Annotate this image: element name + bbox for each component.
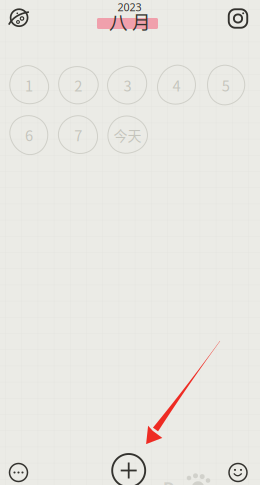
button[interactable]: 5 xyxy=(201,60,250,110)
button[interactable]: Explore xyxy=(1,2,37,34)
staticText: 5 xyxy=(222,74,230,96)
staticText: Da xyxy=(163,477,185,485)
staticText: 4 xyxy=(173,74,181,96)
button[interactable]: 1 xyxy=(4,60,54,110)
button[interactable]: 今天 xyxy=(103,110,152,160)
staticText: 今天 xyxy=(113,125,141,145)
button[interactable]: More xyxy=(0,454,36,485)
staticText: 1 xyxy=(25,74,33,96)
staticText: 3 xyxy=(123,74,131,96)
staticText: 2 xyxy=(74,74,82,96)
button[interactable]: 6 xyxy=(4,110,54,160)
button[interactable]: Add entry xyxy=(107,448,151,485)
button[interactable]: 4 xyxy=(152,60,201,110)
staticText: 八 月 xyxy=(109,7,151,34)
staticText: 7 xyxy=(74,124,82,145)
button[interactable]: 2 xyxy=(54,60,103,110)
staticText: 6 xyxy=(25,124,33,145)
button[interactable]: Mood xyxy=(220,454,256,485)
button[interactable]: Camera xyxy=(220,2,256,34)
button[interactable]: 3 xyxy=(103,60,152,110)
button[interactable]: 7 xyxy=(54,110,103,160)
staticText: 2023 xyxy=(117,0,141,14)
